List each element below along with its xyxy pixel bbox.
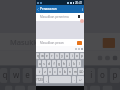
button[interactable]: . — [72, 76, 76, 83]
staticText: t — [50, 70, 55, 80]
button[interactable]: t — [55, 53, 59, 59]
button[interactable]: Back — [36, 5, 84, 13]
button[interactable]: Back — [36, 5, 40, 13]
button[interactable]: w — [10, 68, 20, 83]
staticText: y — [61, 54, 63, 58]
button[interactable]: n — [68, 68, 72, 75]
button[interactable]: Masukkan pesan — [0, 33, 120, 50]
staticText: d — [48, 62, 50, 66]
button[interactable]: ⌦ — [78, 68, 84, 75]
button[interactable]: More options — [80, 5, 84, 13]
button[interactable]: f — [52, 60, 56, 67]
button[interactable]: g — [57, 60, 61, 67]
button[interactable]: p — [80, 53, 84, 59]
button[interactable]: b — [63, 68, 67, 75]
button[interactable]: q — [0, 68, 7, 83]
button[interactable]: s — [42, 60, 46, 67]
button[interactable]: c — [53, 68, 57, 75]
staticText: e — [25, 70, 30, 80]
button[interactable]: y — [60, 68, 70, 83]
staticText: Masukkan pesan — [10, 38, 70, 48]
staticText: . — [74, 78, 75, 82]
button[interactable]: u — [72, 68, 82, 83]
button[interactable]: p — [110, 68, 120, 83]
staticText: ?123 — [36, 78, 43, 82]
staticText: i — [90, 70, 92, 80]
staticText: k — [73, 62, 75, 66]
staticText: p — [112, 70, 117, 80]
button[interactable]: r — [50, 53, 54, 59]
staticText: w — [41, 54, 44, 58]
button[interactable]: y — [60, 53, 64, 59]
button[interactable]: j — [77, 85, 87, 90]
button[interactable]: i — [85, 68, 95, 83]
staticText: z — [44, 70, 46, 74]
staticText: p — [81, 54, 83, 58]
button[interactable]: d — [27, 85, 37, 90]
staticText: Penawaran — [40, 7, 57, 11]
button[interactable]: ?123 — [36, 76, 43, 83]
staticText: y — [62, 70, 67, 80]
staticText: b — [64, 70, 66, 74]
button[interactable]: r — [35, 68, 45, 83]
staticText: q — [2, 70, 7, 80]
staticText: i — [72, 54, 73, 58]
button[interactable]: a — [38, 60, 41, 67]
staticText: Masukkan penerima — [40, 15, 69, 19]
button[interactable]: i — [70, 53, 74, 59]
button[interactable]: m — [73, 68, 77, 75]
button[interactable]: e — [45, 53, 49, 59]
staticText: u — [75, 70, 80, 80]
button[interactable]: o — [97, 68, 107, 83]
staticText: ↵ — [79, 78, 82, 82]
button[interactable]: l — [77, 60, 81, 67]
staticText: r — [51, 54, 53, 58]
staticText: e — [46, 54, 48, 58]
staticText: h — [63, 62, 65, 66]
button[interactable]: Masukkan penerima — [36, 13, 84, 21]
staticText: Masukkan pesan — [40, 41, 64, 45]
button[interactable]: k — [72, 60, 76, 67]
staticText: j — [69, 62, 70, 66]
staticText: w — [12, 70, 20, 80]
button[interactable]: ⇧ — [36, 68, 42, 75]
staticText: 20:41 — [75, 1, 83, 5]
staticText: s — [43, 62, 45, 66]
staticText: x — [49, 70, 51, 74]
button[interactable]: Pick contact — [77, 14, 83, 20]
staticText: c — [54, 70, 56, 74]
button[interactable]: ↵ — [77, 76, 84, 83]
staticText: o — [100, 70, 105, 80]
button[interactable]: , — [44, 76, 48, 83]
button[interactable]: x — [48, 68, 52, 75]
button[interactable]: u — [65, 53, 69, 59]
staticText: r — [37, 70, 42, 80]
staticText: t — [56, 54, 58, 58]
button[interactable]: h — [62, 60, 66, 67]
button[interactable]: j — [67, 60, 71, 67]
button[interactable]: o — [75, 53, 79, 59]
button[interactable]: v — [58, 68, 62, 75]
button[interactable]: Masukkan pesan — [36, 39, 84, 46]
button[interactable]: q — [36, 53, 39, 59]
button[interactable]: Send — [77, 41, 82, 45]
staticText: ⌦ — [79, 70, 84, 74]
staticText: v — [59, 70, 61, 74]
staticText: q — [37, 54, 39, 58]
staticText: o — [76, 54, 78, 58]
staticText: l — [79, 62, 80, 66]
button[interactable]: t — [47, 68, 57, 83]
button[interactable]: e — [22, 68, 32, 83]
button[interactable]: d — [47, 60, 51, 67]
button[interactable]: Send — [102, 38, 115, 48]
button[interactable]: w — [40, 53, 44, 59]
button[interactable]: z — [43, 68, 47, 75]
